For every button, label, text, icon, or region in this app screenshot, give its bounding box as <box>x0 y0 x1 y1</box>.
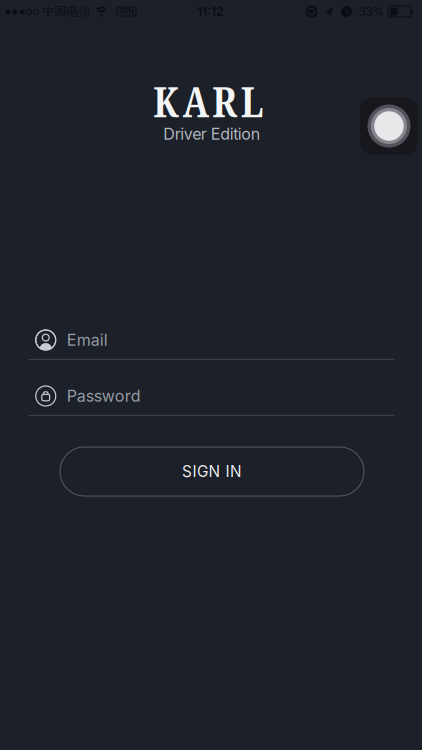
staticText: SIGN IN <box>182 462 242 481</box>
staticText: Email <box>67 330 108 350</box>
button[interactable]: Email <box>29 326 394 360</box>
staticText: 11:12 <box>197 4 224 19</box>
button[interactable] <box>360 97 418 155</box>
button[interactable]: Password <box>29 382 394 416</box>
staticText: 33% <box>358 4 384 19</box>
staticText: 中国电信 <box>42 4 90 19</box>
staticText: Password <box>67 386 141 406</box>
staticText: KARL <box>153 72 264 130</box>
staticText: Driver Edition <box>163 124 260 144</box>
staticText: VPN <box>119 7 133 16</box>
button[interactable]: SIGN IN <box>60 447 364 496</box>
